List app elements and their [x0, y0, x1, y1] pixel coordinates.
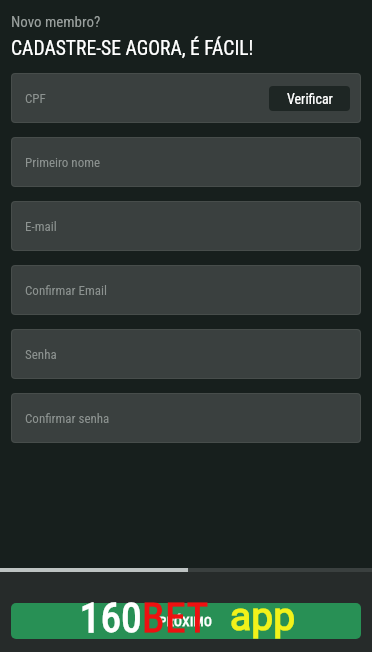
staticText: Novo membro? — [11, 13, 101, 31]
staticText: BET — [142, 594, 209, 642]
button[interactable]: Senha — [11, 329, 361, 379]
button[interactable]: Confirmar senha — [11, 393, 361, 443]
staticText: app — [230, 589, 296, 646]
staticText: Verificar — [287, 91, 333, 107]
staticText: Primeiro nome — [25, 155, 101, 170]
staticText: 160 — [80, 594, 142, 642]
staticText: CADASTRE-SE AGORA, É FÁCIL! — [11, 37, 254, 60]
button[interactable]: E-mail — [11, 201, 361, 251]
staticText: Confirmar Email — [25, 283, 107, 298]
button[interactable]: PRÓXIMO — [11, 603, 361, 639]
button[interactable]: Verificar — [269, 86, 350, 111]
button[interactable]: Confirmar Email — [11, 265, 361, 315]
staticText: Senha — [25, 347, 57, 362]
button[interactable]: Primeiro nome — [11, 137, 361, 187]
staticText: E-mail — [25, 219, 57, 234]
button[interactable]: CPF — [11, 73, 361, 123]
staticText: PRÓXIMO — [159, 614, 213, 629]
staticText: Confirmar senha — [25, 411, 110, 426]
staticText: CPF — [25, 91, 46, 106]
